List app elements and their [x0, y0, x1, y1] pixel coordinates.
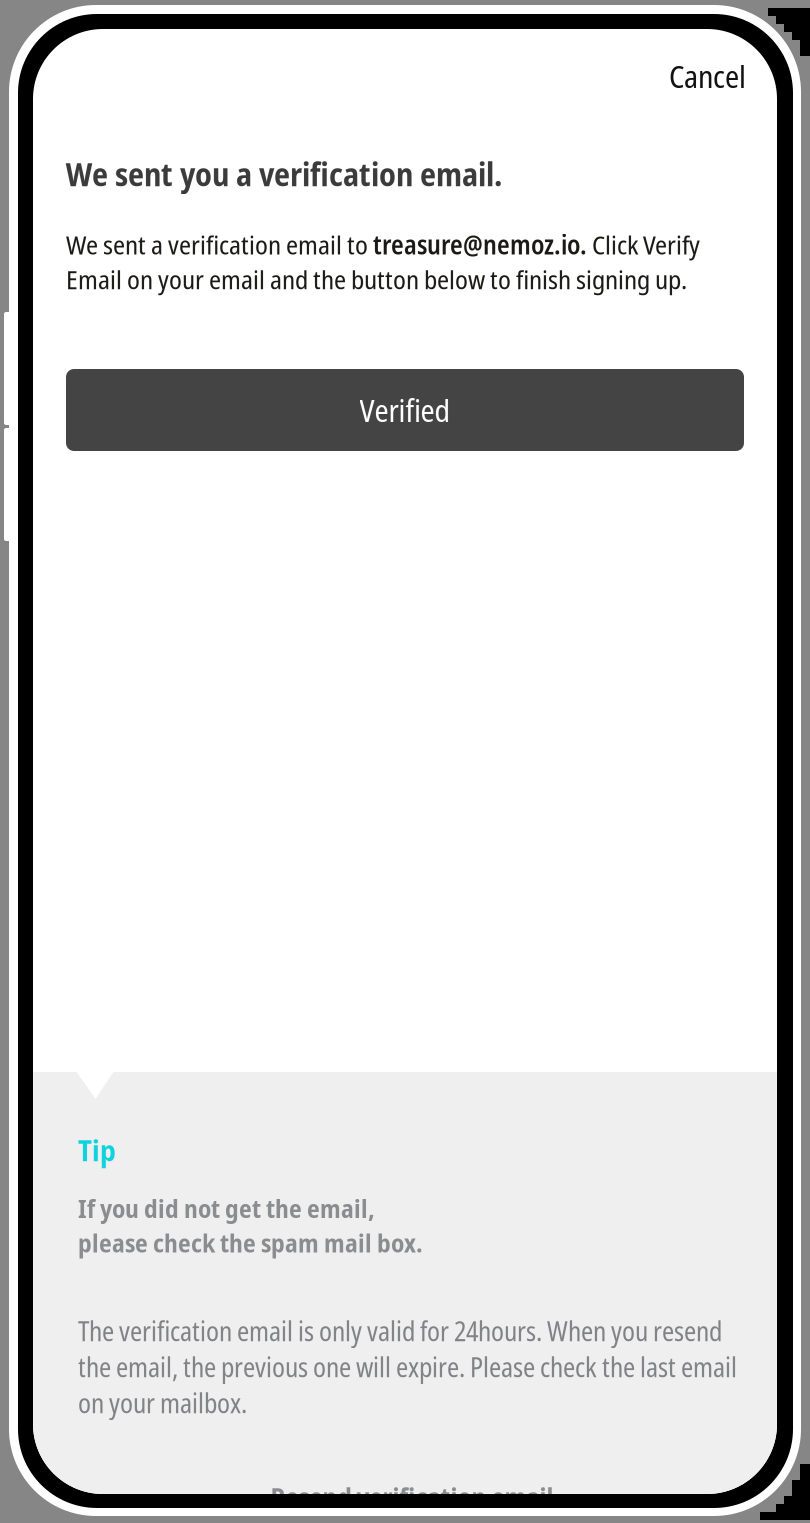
- staticText: The verification email is only valid for…: [78, 1313, 737, 1421]
- staticText: We sent a verification email to treasure…: [66, 227, 700, 296]
- staticText: Verified: [359, 389, 450, 431]
- button[interactable]: Resend verification email: [78, 1472, 746, 1522]
- button[interactable]: Verified: [66, 369, 744, 451]
- staticText: If you did not get the email, please che…: [78, 1191, 423, 1260]
- staticText: We sent you a verification email.: [66, 152, 502, 196]
- staticText: Tip: [78, 1130, 116, 1170]
- staticText: Cancel: [669, 55, 746, 97]
- staticText: Resend verification email: [270, 1479, 553, 1515]
- button[interactable]: Cancel: [636, 49, 746, 103]
